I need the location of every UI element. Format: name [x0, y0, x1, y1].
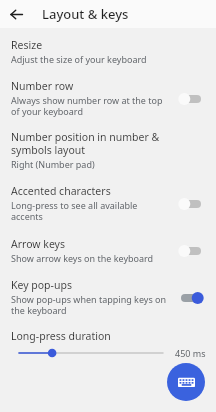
staticText: Long-press duration — [11, 329, 111, 343]
button[interactable]: Off — [176, 89, 206, 109]
staticText: Always show number row at the top of you… — [11, 94, 168, 118]
button[interactable]: Key pop-ups — [0, 276, 216, 319]
staticText: Number row — [11, 79, 74, 93]
staticText: Resize — [11, 38, 43, 52]
button[interactable]: Off — [176, 241, 206, 261]
staticText: Accented characters — [11, 184, 111, 198]
staticText: Arrow keys — [11, 237, 66, 251]
button[interactable]: Switch keyboard — [167, 363, 205, 401]
staticText: Number position in number & symbols layo… — [11, 130, 198, 157]
button[interactable]: Accented characters — [0, 182, 216, 225]
staticText: Key pop-ups — [11, 278, 72, 292]
staticText: Adjust the size of your keyboard — [11, 53, 147, 65]
button[interactable]: Number row — [0, 77, 216, 120]
button[interactable]: Number position in number & symbols layo… — [0, 128, 216, 172]
staticText: Long-press to see all available accents — [11, 199, 168, 223]
staticText: Show arrow keys on the keyboard — [11, 252, 154, 264]
button[interactable]: Resize — [0, 36, 216, 67]
button[interactable]: Back — [5, 3, 27, 25]
staticText: Layout & keys — [42, 5, 129, 23]
staticText: 450 ms — [175, 347, 206, 359]
staticText: Right (Number pad) — [11, 158, 95, 170]
button[interactable]: Arrow keys — [0, 235, 216, 266]
button[interactable]: Off — [176, 194, 206, 214]
button[interactable]: On — [176, 288, 206, 308]
staticText: Show pop-ups when tapping keys on the ke… — [11, 293, 168, 317]
button[interactable]: Long-press duration — [0, 329, 216, 360]
